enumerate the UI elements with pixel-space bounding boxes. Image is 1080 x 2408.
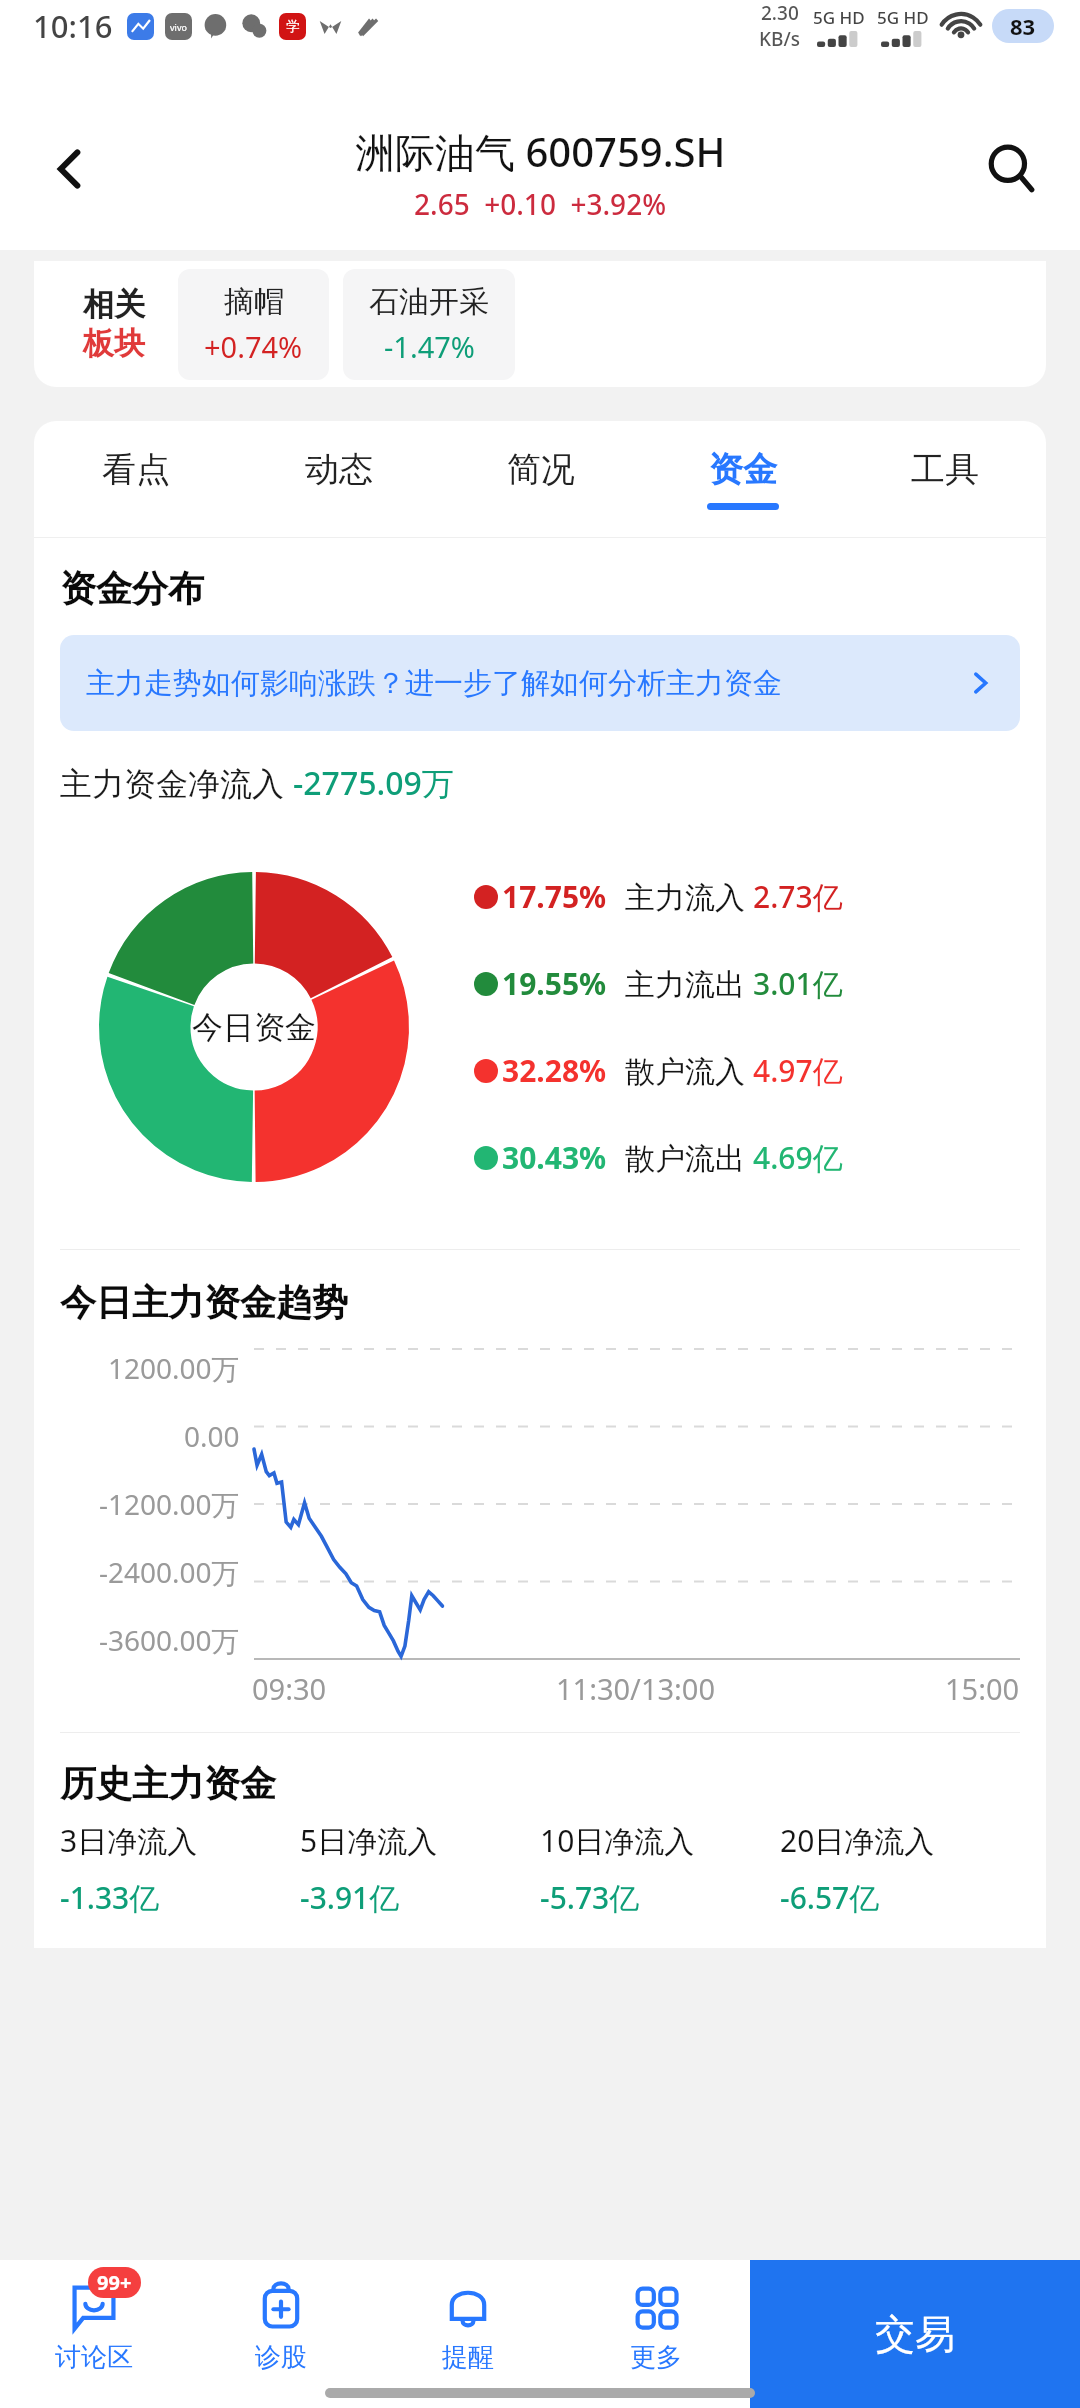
staticText: 提醒: [442, 2341, 494, 2374]
staticText: -3.91亿: [300, 1877, 400, 1918]
staticText: 简况: [507, 448, 575, 491]
staticText: -1.33亿: [60, 1877, 160, 1918]
staticText: 更多: [630, 2341, 682, 2374]
staticText: -5.73亿: [540, 1877, 640, 1918]
staticText: +0.74%: [204, 327, 303, 366]
staticText: 10:16: [33, 5, 113, 47]
staticText: -6.57亿: [780, 1877, 880, 1918]
button[interactable]: 交易: [750, 2260, 1080, 2408]
button[interactable]: 看点: [34, 421, 237, 537]
staticText: -1200.00万: [99, 1485, 240, 1523]
button[interactable]: 资金: [642, 421, 844, 537]
staticText: 诊股: [255, 2341, 307, 2374]
staticText: 5G HD: [877, 6, 929, 29]
staticText: 3.01亿: [753, 963, 843, 1004]
staticText: 0.00: [184, 1417, 240, 1455]
staticText: vivo: [170, 21, 187, 33]
staticText: 20日净流入: [780, 1820, 935, 1861]
button[interactable]: 工具: [844, 421, 1046, 537]
staticText: 板块: [83, 324, 145, 363]
staticText: 学: [286, 18, 300, 36]
button[interactable]: 提醒: [374, 2260, 562, 2408]
staticText: -2400.00万: [99, 1553, 240, 1591]
staticText: 11:30/13:00: [556, 1669, 716, 1708]
button[interactable]: 相关: [56, 285, 172, 363]
staticText: 今日主力资金趋势: [60, 1280, 348, 1325]
staticText: 散户流出: [625, 1137, 753, 1178]
staticText: -3600.00万: [99, 1621, 240, 1659]
button[interactable]: 99+: [0, 2260, 187, 2408]
staticText: 今日资金: [192, 1008, 316, 1047]
staticText: 17.75%: [502, 876, 607, 917]
staticText: 工具: [911, 448, 979, 491]
staticText: 2.30: [761, 0, 799, 26]
staticText: 15:00: [945, 1669, 1020, 1708]
staticText: 散户流入: [625, 1050, 753, 1091]
button[interactable]: Back: [28, 127, 112, 211]
staticText: 石油开采: [369, 283, 489, 321]
button[interactable]: 简况: [440, 421, 642, 537]
button[interactable]: 诊股: [187, 2260, 374, 2408]
staticText: -2775.09万: [293, 761, 454, 805]
staticText: -1.47%: [384, 327, 475, 366]
staticText: 32.28%: [502, 1050, 607, 1091]
staticText: 5G HD: [813, 6, 865, 29]
staticText: 看点: [102, 448, 170, 491]
staticText: 洲际油气 600759.SH: [355, 124, 726, 179]
staticText: 2.73亿: [753, 876, 843, 917]
staticText: 10日净流入: [540, 1820, 695, 1861]
staticText: 2.65 +0.10 +3.92%: [414, 185, 667, 223]
staticText: 19.55%: [502, 963, 607, 1004]
staticText: 主力流入: [625, 876, 753, 917]
staticText: 3日净流入: [60, 1820, 198, 1861]
staticText: 5日净流入: [300, 1820, 438, 1861]
staticText: 主力流出: [625, 963, 753, 1004]
staticText: 讨论区: [55, 2341, 133, 2374]
staticText: 交易: [875, 2309, 955, 2359]
button[interactable]: 石油开采: [343, 269, 515, 380]
staticText: 1200.00万: [108, 1349, 240, 1387]
button[interactable]: 动态: [237, 421, 440, 537]
staticText: 4.69亿: [753, 1137, 843, 1178]
staticText: 主力资金净流入: [60, 761, 293, 805]
staticText: 99+: [97, 2269, 132, 2296]
button[interactable]: 摘帽: [178, 269, 329, 380]
staticText: 历史主力资金: [60, 1761, 276, 1806]
staticText: 主力走势如何影响涨跌？进一步了解如何分析主力资金: [86, 665, 782, 702]
staticText: 09:30: [252, 1669, 327, 1708]
staticText: 相关: [83, 285, 145, 324]
staticText: 摘帽: [224, 283, 284, 321]
staticText: 动态: [305, 448, 373, 491]
button[interactable]: Search: [968, 126, 1054, 212]
staticText: 30.43%: [502, 1137, 607, 1178]
button[interactable]: 更多: [562, 2260, 750, 2408]
staticText: 83: [1010, 11, 1036, 41]
button[interactable]: 主力走势如何影响涨跌？进一步了解如何分析主力资金: [60, 635, 1020, 731]
staticText: 资金: [709, 448, 777, 491]
staticText: 4.97亿: [753, 1050, 843, 1091]
staticText: KB/s: [759, 26, 800, 52]
staticText: 资金分布: [60, 566, 204, 611]
